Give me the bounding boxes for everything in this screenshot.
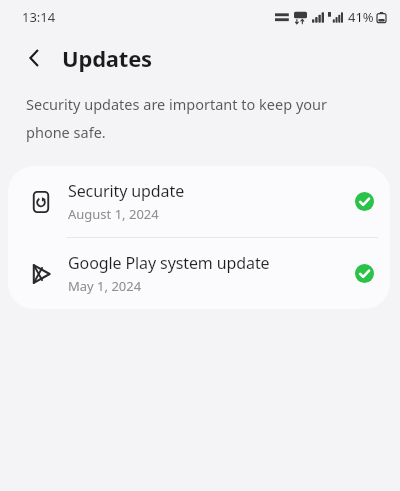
staticText: Google Play system update	[68, 252, 270, 274]
staticText: Security update	[68, 180, 185, 202]
staticText: August 1, 2024	[68, 205, 159, 223]
button[interactable]: Google Play system update	[8, 238, 390, 309]
staticText: Security updates are important to keep y…	[26, 94, 370, 142]
staticText: May 1, 2024	[68, 277, 142, 295]
staticText: Updates	[62, 43, 152, 73]
button[interactable]: Security update	[8, 166, 390, 237]
staticText: 41%	[348, 8, 374, 26]
staticText: 13:14	[22, 8, 56, 26]
button[interactable]: Back	[16, 40, 52, 76]
